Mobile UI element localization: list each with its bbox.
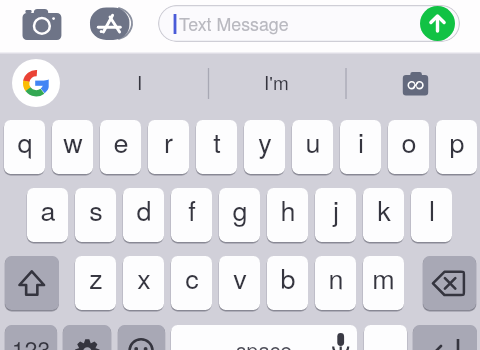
- button[interactable]: y: [244, 120, 285, 174]
- staticText: r: [164, 122, 173, 161]
- staticText: w: [63, 122, 83, 161]
- staticText: d: [136, 190, 152, 229]
- staticText: m: [372, 258, 395, 297]
- staticText: t: [213, 122, 221, 161]
- staticText: l: [429, 190, 435, 229]
- button[interactable]: k: [363, 188, 404, 242]
- button[interactable]: Google: [12, 59, 60, 107]
- button[interactable]: App Store: [89, 6, 134, 42]
- staticText: p: [449, 122, 465, 161]
- button[interactable]: [364, 325, 407, 350]
- staticText: q: [17, 122, 33, 161]
- button[interactable]: p: [436, 120, 477, 174]
- button[interactable]: f: [171, 188, 212, 242]
- staticText: c: [185, 258, 199, 297]
- button[interactable]: Photos: [400, 70, 432, 98]
- button[interactable]: m: [363, 256, 404, 310]
- button[interactable]: c: [171, 256, 212, 310]
- button[interactable]: Send: [420, 6, 455, 41]
- staticText: z: [89, 258, 103, 297]
- button[interactable]: d: [123, 188, 164, 242]
- button[interactable]: space: [171, 325, 357, 350]
- staticText: space: [236, 334, 293, 350]
- staticText: f: [188, 190, 196, 229]
- button[interactable]: Backspace: [423, 256, 476, 310]
- staticText: Text Message: [179, 11, 289, 36]
- button[interactable]: b: [267, 256, 308, 310]
- button[interactable]: j: [315, 188, 356, 242]
- staticText: I'm: [264, 68, 289, 95]
- button[interactable]: 123: [5, 325, 57, 350]
- button[interactable]: t: [196, 120, 237, 174]
- button[interactable]: w: [52, 120, 93, 174]
- staticText: u: [305, 122, 321, 161]
- button[interactable]: s: [75, 188, 116, 242]
- button[interactable]: Return: [413, 325, 477, 350]
- button[interactable]: l: [411, 188, 452, 242]
- staticText: e: [113, 122, 129, 161]
- button[interactable]: a: [27, 188, 68, 242]
- button[interactable]: o: [388, 120, 429, 174]
- button[interactable]: Text Message: [158, 5, 460, 42]
- staticText: y: [258, 122, 272, 161]
- staticText: x: [137, 258, 151, 297]
- button[interactable]: g: [219, 188, 260, 242]
- button[interactable]: i: [340, 120, 381, 174]
- button[interactable]: u: [292, 120, 333, 174]
- staticText: I: [137, 68, 143, 95]
- staticText: 123: [5, 332, 57, 350]
- button[interactable]: x: [123, 256, 164, 310]
- staticText: b: [280, 258, 296, 297]
- staticText: a: [40, 190, 56, 229]
- button[interactable]: r: [148, 120, 189, 174]
- button[interactable]: e: [100, 120, 141, 174]
- staticText: h: [280, 190, 296, 229]
- button[interactable]: h: [267, 188, 308, 242]
- button[interactable]: Settings: [63, 325, 111, 350]
- button[interactable]: Camera: [20, 9, 64, 41]
- staticText: n: [328, 258, 344, 297]
- button[interactable]: q: [4, 120, 45, 174]
- staticText: v: [233, 258, 247, 297]
- staticText: g: [232, 190, 248, 229]
- staticText: o: [401, 122, 417, 161]
- button[interactable]: v: [219, 256, 260, 310]
- button[interactable]: n: [315, 256, 356, 310]
- button[interactable]: Emoji: [118, 325, 165, 350]
- button[interactable]: z: [75, 256, 116, 310]
- button[interactable]: Shift: [5, 256, 59, 310]
- staticText: s: [89, 190, 103, 229]
- staticText: k: [377, 190, 391, 229]
- staticText: i: [358, 122, 364, 161]
- staticText: j: [333, 190, 339, 229]
